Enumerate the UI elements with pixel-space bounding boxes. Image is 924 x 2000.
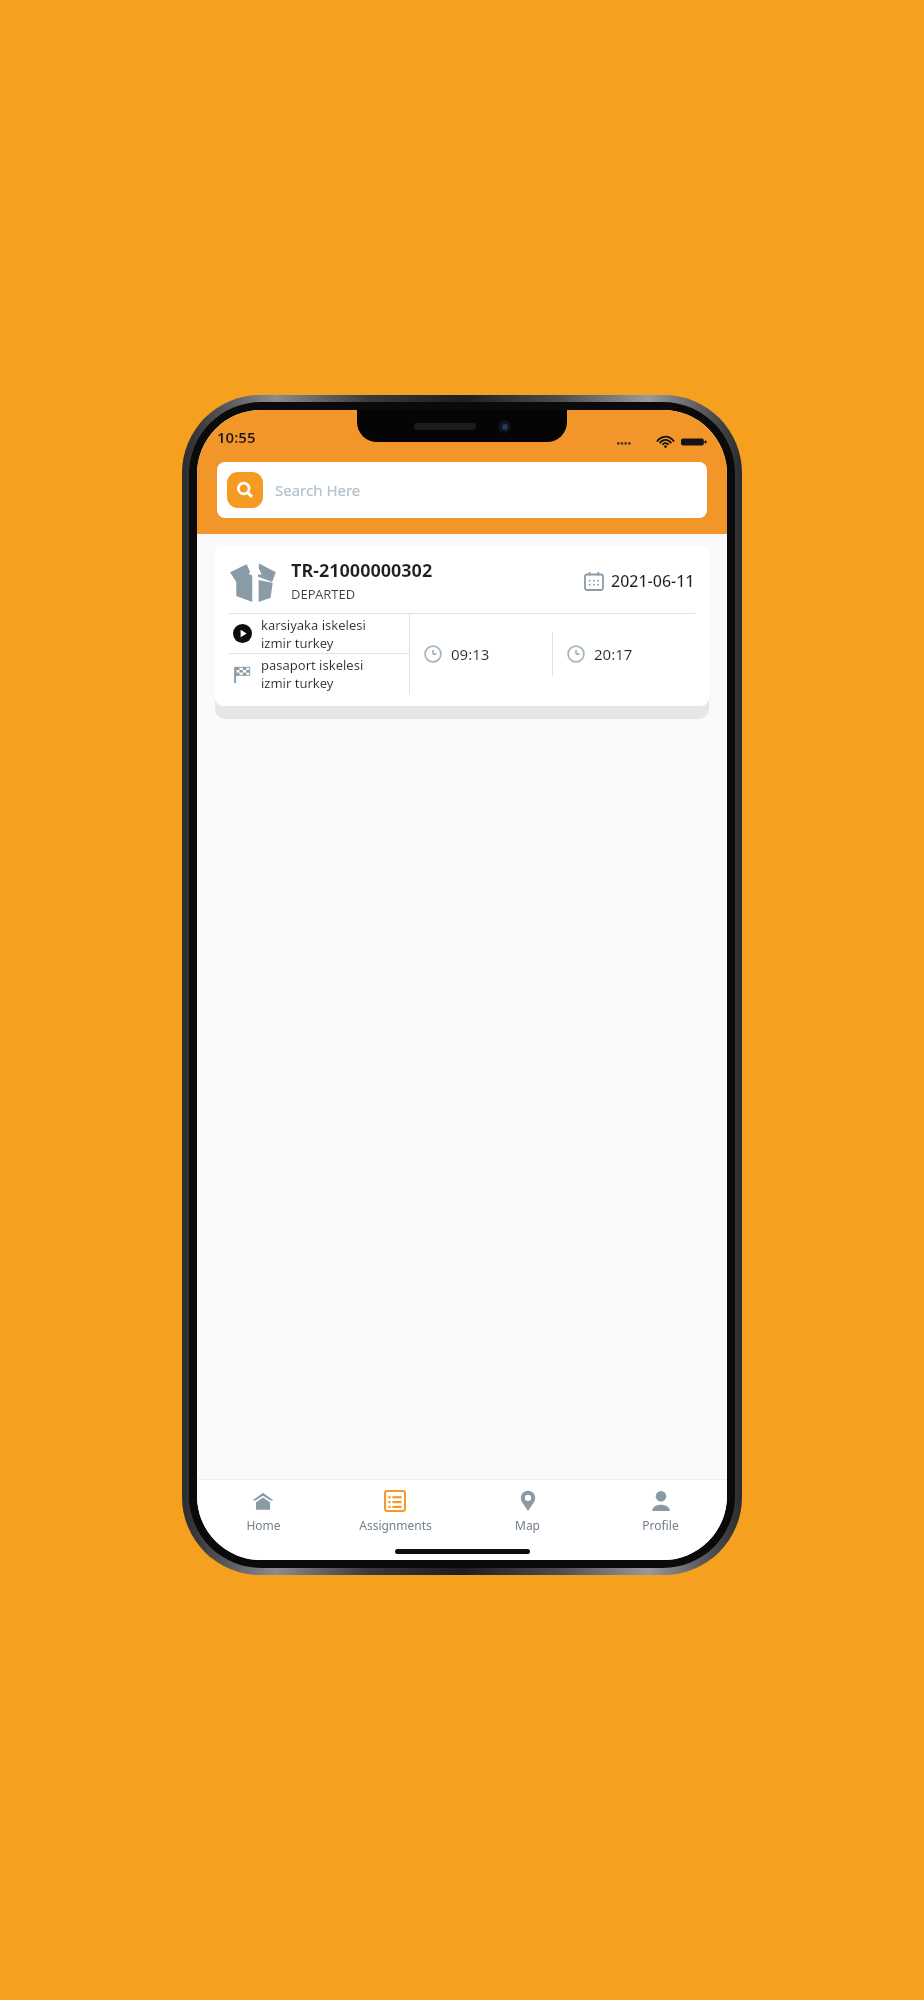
staticText: 20:17 [594,644,633,664]
button[interactable]: 09:13 [410,614,552,694]
staticText: pasaport iskelesi [261,656,364,674]
staticText: TR-21000000302 [291,558,433,583]
staticText: izmir turkey [261,674,334,692]
staticText: 10:55 [217,427,256,447]
staticText: Assignments [359,1517,432,1533]
button[interactable]: Assignments [329,1480,461,1542]
button[interactable]: 20:17 [553,614,695,694]
button[interactable]: Profile [594,1480,727,1542]
button[interactable]: TR-21000000302 [215,546,709,706]
staticText: 2021-06-11 [611,570,695,592]
staticText: Profile [642,1517,679,1533]
staticText: 09:13 [451,644,490,664]
button[interactable]: Home [197,1480,329,1542]
staticText: izmir turkey [261,634,334,652]
staticText: DEPARTED [291,585,356,603]
button[interactable]: Search [217,462,707,518]
other: Search [227,472,263,508]
staticText: karsiyaka iskelesi [261,616,366,634]
staticText: Map [515,1517,540,1533]
button[interactable]: Map [461,1480,594,1542]
staticText: Home [246,1517,281,1533]
staticText: Search Here [275,480,361,500]
